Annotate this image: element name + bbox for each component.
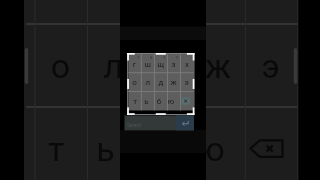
- button[interactable]: Keyboard screenshot crop: [0, 0, 320, 180]
